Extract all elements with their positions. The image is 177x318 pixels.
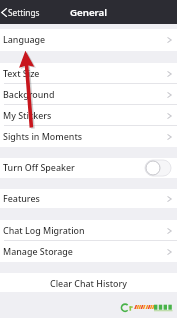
staticText: General bbox=[70, 6, 107, 19]
staticText: Chat Log Migration bbox=[3, 224, 85, 236]
button[interactable]: My Stickers bbox=[0, 105, 177, 126]
button[interactable]: Background bbox=[0, 84, 177, 105]
staticText: Text Size bbox=[3, 67, 40, 79]
staticText: Sights in Moments bbox=[3, 130, 83, 142]
button[interactable]: Back to Settings bbox=[0, 4, 44, 21]
button[interactable]: Manage Storage bbox=[0, 241, 177, 262]
staticText: Language bbox=[3, 33, 46, 45]
staticText: Manage Storage bbox=[3, 245, 73, 257]
button[interactable]: Turn Off Speaker bbox=[0, 158, 177, 178]
button[interactable]: Language bbox=[0, 29, 177, 51]
button[interactable]: Features bbox=[0, 189, 177, 208]
staticText: Background bbox=[3, 88, 55, 100]
staticText: Clear Chat History bbox=[50, 277, 127, 289]
button[interactable]: Sights in Moments bbox=[0, 126, 177, 147]
button[interactable]: Chat Log Migration bbox=[0, 220, 177, 241]
button[interactable]: Clear Chat History bbox=[0, 273, 177, 292]
staticText: Turn Off Speaker bbox=[3, 161, 75, 173]
button[interactable]: Text Size bbox=[0, 63, 177, 84]
staticText: Features bbox=[3, 192, 40, 204]
staticText: Settings bbox=[8, 7, 40, 18]
staticText: My Stickers bbox=[3, 109, 52, 121]
